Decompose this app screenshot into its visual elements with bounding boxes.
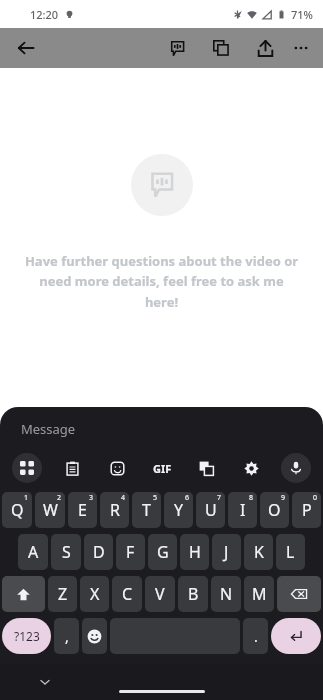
button[interactable]: D — [84, 534, 113, 570]
button[interactable]: S — [51, 534, 81, 570]
button[interactable]: K — [244, 534, 273, 570]
staticText: L — [286, 541, 295, 563]
button[interactable]: M — [244, 576, 274, 612]
button[interactable]: T — [132, 492, 161, 528]
button[interactable]: Copy — [203, 30, 239, 66]
button[interactable]: C — [112, 576, 142, 612]
button[interactable]: Translate — [191, 453, 221, 483]
staticText: 2 — [57, 493, 62, 503]
button[interactable]: O — [260, 492, 289, 528]
button[interactable]: Hide keyboard — [34, 671, 56, 693]
staticText: H — [189, 541, 201, 563]
staticText: X — [90, 583, 100, 605]
button[interactable]: L — [276, 534, 305, 570]
staticText: 7 — [217, 493, 222, 503]
button[interactable]: Emoji — [82, 618, 107, 654]
staticText: . — [254, 627, 258, 646]
button[interactable]: J — [212, 534, 241, 570]
button[interactable]: A — [18, 534, 48, 570]
button[interactable]: Q — [2, 492, 32, 528]
button[interactable]: Back — [8, 30, 44, 66]
button[interactable]: Stickers — [102, 453, 132, 483]
staticText: 71% — [291, 7, 313, 22]
staticText: Y — [174, 499, 184, 521]
button[interactable]: GIF — [147, 453, 177, 483]
staticText: D — [93, 541, 105, 563]
staticText: S — [62, 541, 71, 563]
button[interactable]: N — [211, 576, 241, 612]
button[interactable]: I — [228, 492, 257, 528]
button[interactable]: Message — [21, 420, 76, 438]
button[interactable]: B — [178, 576, 208, 612]
button[interactable]: W — [35, 492, 65, 528]
staticText: 0 — [313, 493, 318, 503]
staticText: K — [254, 541, 264, 563]
staticText: E — [78, 499, 87, 521]
staticText: J — [224, 541, 229, 563]
staticText: M — [252, 583, 267, 605]
staticText: F — [126, 541, 135, 563]
staticText: Q — [11, 499, 24, 521]
button[interactable]: Z — [48, 576, 77, 612]
staticText: 6 — [185, 493, 190, 503]
staticText: P — [302, 499, 312, 521]
button[interactable]: H — [180, 534, 209, 570]
button[interactable]: Voice input — [281, 453, 311, 483]
staticText: ?123 — [14, 628, 40, 644]
button[interactable]: Backspace — [277, 576, 321, 612]
staticText: , — [65, 627, 69, 646]
staticText: I — [240, 499, 246, 521]
button[interactable]: F — [116, 534, 145, 570]
button[interactable]: Comma — [54, 618, 79, 654]
staticText: 5 — [153, 493, 158, 503]
button[interactable]: X — [80, 576, 109, 612]
staticText: 1 — [24, 493, 29, 503]
button[interactable]: E — [68, 492, 97, 528]
button[interactable]: G — [148, 534, 177, 570]
staticText: Z — [58, 583, 68, 605]
staticText: 3 — [89, 493, 94, 503]
button[interactable]: P — [292, 492, 321, 528]
button[interactable]: Enter — [271, 618, 321, 654]
button[interactable]: Y — [164, 492, 193, 528]
staticText: 8 — [249, 493, 254, 503]
staticText: N — [220, 583, 233, 605]
staticText: A — [28, 541, 39, 563]
staticText: V — [155, 583, 165, 605]
staticText: C — [122, 583, 133, 605]
button[interactable]: R — [100, 492, 129, 528]
button[interactable]: Apps — [12, 453, 42, 483]
staticText: U — [205, 499, 217, 521]
button[interactable]: Share — [247, 30, 283, 66]
staticText: R — [110, 499, 120, 521]
button[interactable]: ?123 — [2, 618, 51, 654]
button[interactable]: Settings — [236, 453, 266, 483]
staticText: W — [43, 499, 58, 521]
staticText: 4 — [121, 493, 126, 503]
staticText: G — [157, 541, 169, 563]
staticText: 12:20 — [30, 7, 59, 22]
staticText: O — [268, 499, 281, 521]
button[interactable]: More options — [283, 30, 319, 66]
staticText: 9 — [281, 493, 286, 503]
staticText: T — [142, 499, 151, 521]
staticText: B — [188, 583, 199, 605]
button[interactable]: Clipboard — [57, 453, 87, 483]
staticText: GIF — [153, 461, 172, 476]
button[interactable]: Chat — [159, 30, 195, 66]
button[interactable]: Shift — [2, 576, 45, 612]
button[interactable]: Period — [243, 618, 268, 654]
button[interactable]: V — [145, 576, 175, 612]
staticText: Have further questions about the video o… — [22, 252, 301, 311]
button[interactable]: U — [196, 492, 225, 528]
